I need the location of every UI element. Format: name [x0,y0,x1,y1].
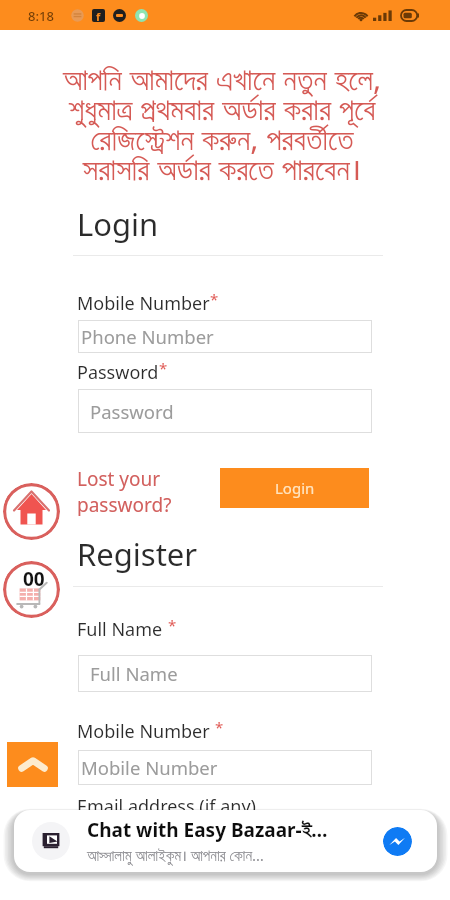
button[interactable]: Chat with Easy Bazaar-ই… [14,810,437,872]
staticText: * [215,717,224,737]
staticText: f [96,9,101,22]
button[interactable]: Lost your password? [77,466,187,516]
staticText: * [168,615,177,635]
staticText: Chat with Easy Bazaar-ই… [87,817,328,843]
staticText: * [210,289,219,309]
staticText: Email address (if any) [77,794,257,819]
staticText: Lost your password? [77,466,187,516]
staticText: Full Name [90,661,178,686]
button[interactable]: Cart [3,561,60,618]
button[interactable]: Password [78,389,372,433]
staticText: আস্সালামু আলাইকুম। আপনার কোন… [87,845,264,865]
staticText: Login [275,478,315,498]
staticText: 00 [23,566,45,592]
staticText: Password [77,360,159,385]
button[interactable]: Login [220,468,369,508]
button[interactable]: Home [3,483,60,540]
staticText: Register [77,533,198,575]
button[interactable]: Open Messenger [383,827,412,856]
button[interactable]: Phone Number [78,320,372,353]
staticText: Password [90,399,174,424]
staticText: Full Name [77,617,163,642]
staticText: আপনি আমাদের এখানে নতুন হলে, শুধুমাত্র প্… [17,57,427,188]
staticText: * [159,358,168,378]
staticText: Login [77,203,159,245]
staticText: Phone Number [81,324,214,349]
staticText: Mobile Number [81,755,218,780]
button[interactable]: Scroll to top [7,742,58,787]
staticText: Mobile Number [77,291,210,316]
staticText: Mobile Number [77,719,210,744]
staticText: 8:18 [28,7,54,25]
button[interactable]: Mobile Number [78,750,372,785]
button[interactable]: Full Name [78,655,372,692]
